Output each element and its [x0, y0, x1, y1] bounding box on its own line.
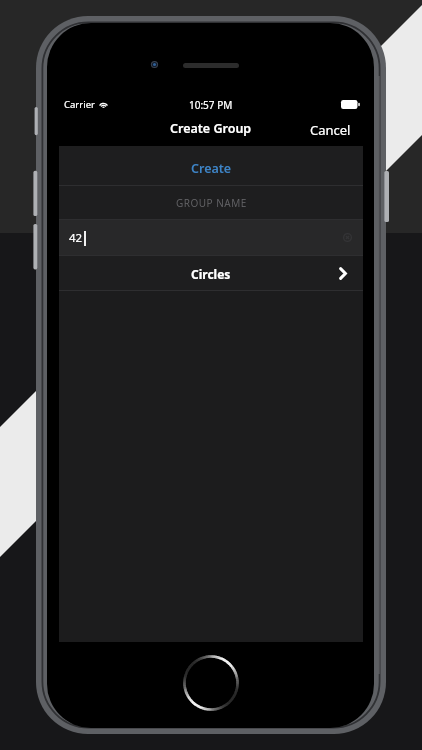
- other: Open Circles: [339, 267, 347, 280]
- staticText: Create: [191, 160, 232, 177]
- staticText: GROUP NAME: [176, 196, 247, 210]
- button[interactable]: GROUP NAME: [59, 186, 363, 219]
- button[interactable]: Cancel: [298, 115, 363, 145]
- staticText: Circles: [191, 266, 231, 282]
- staticText: Cancel: [310, 121, 351, 139]
- button[interactable]: 42: [59, 220, 363, 255]
- button[interactable]: Circles: [59, 256, 363, 290]
- staticText: Carrier: [64, 98, 95, 111]
- other: Clear text: [343, 233, 352, 242]
- staticText: 10:57 PM: [189, 98, 233, 112]
- staticText: Create Group: [170, 120, 252, 137]
- staticText: 42: [69, 230, 83, 246]
- button[interactable]: Create: [59, 146, 363, 185]
